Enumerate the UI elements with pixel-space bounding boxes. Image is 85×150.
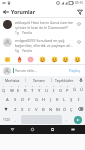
button[interactable]: Emoji	[61, 55, 70, 64]
staticText: S	[14, 97, 17, 103]
button[interactable]: Klavye	[68, 125, 77, 134]
button[interactable]: H	[40, 94, 47, 104]
staticText: T	[31, 88, 34, 94]
staticText: 1	[3, 85, 5, 88]
button[interactable]: Paylaş	[68, 67, 82, 74]
staticText: Paylaş	[69, 68, 81, 73]
button[interactable]: Geri	[0, 6, 11, 17]
button[interactable]: 5	[29, 84, 36, 94]
button[interactable]: erdgan0059 Sonuland en şuğ bağımlılar, e…	[0, 36, 85, 54]
staticText: 0	[67, 85, 69, 88]
staticText: A	[6, 97, 9, 103]
button[interactable]: Emoji	[15, 55, 24, 64]
button[interactable]: L	[61, 94, 68, 104]
staticText: Ü	[80, 87, 84, 93]
button[interactable]: S	[11, 94, 19, 104]
button[interactable]: F	[26, 94, 33, 104]
button[interactable]: Tuş	[75, 104, 85, 114]
staticText: 5g Yanıtla	[15, 49, 33, 53]
button[interactable]: 7	[43, 84, 50, 94]
staticText: U	[45, 88, 49, 94]
button[interactable]: Ç	[68, 104, 75, 114]
button[interactable]: mkbayzit Hani kısmı iLanız üzerine iyi b…	[0, 18, 85, 36]
button[interactable]: 8	[50, 84, 57, 94]
button[interactable]: 0	[64, 84, 71, 94]
button[interactable]: ?123	[0, 115, 12, 124]
button[interactable]: X	[19, 104, 26, 114]
button[interactable]: Emoji	[50, 55, 59, 64]
staticText: Merhaba	[5, 78, 20, 83]
staticText: Yorumlar	[11, 8, 35, 15]
button[interactable]: 1	[0, 84, 8, 94]
button[interactable]: Emoji	[73, 55, 82, 64]
button[interactable]: Yorum ekle...	[13, 68, 68, 73]
button[interactable]: V	[33, 104, 40, 114]
staticText: Teşekkürler	[55, 78, 74, 83]
button[interactable]: Z	[11, 104, 19, 114]
button[interactable]: C	[26, 104, 33, 114]
button[interactable]: Emoji	[26, 55, 35, 64]
staticText: ,	[15, 117, 17, 122]
staticText: 8	[53, 85, 55, 88]
button[interactable]: Emoji	[38, 55, 47, 64]
staticText: B	[42, 107, 45, 113]
button[interactable]: Son uygulamalar	[48, 125, 57, 134]
button[interactable]: Beğen	[75, 38, 82, 45]
staticText: Ç	[70, 107, 73, 113]
staticText: mkbayzit Hani kısmı iLanız üzerine iyi b…	[15, 20, 74, 30]
button[interactable]: 6	[36, 84, 43, 94]
button[interactable]: 2	[8, 84, 15, 94]
button[interactable]: 4	[22, 84, 29, 94]
staticText: ?123	[3, 118, 10, 122]
staticText: O	[59, 88, 63, 94]
button[interactable]: Tuş	[0, 104, 11, 114]
button[interactable]: Ğ	[71, 84, 78, 94]
staticText: L	[63, 97, 66, 103]
button[interactable]: Geri	[8, 125, 17, 134]
button[interactable]: N	[47, 104, 54, 114]
staticText: G	[35, 97, 39, 103]
button[interactable]: I	[75, 94, 82, 104]
staticText: 9	[60, 85, 62, 88]
staticText: F	[28, 97, 31, 103]
staticText: Ğ	[73, 87, 77, 93]
button[interactable]: Ü	[78, 84, 85, 94]
button[interactable]: Ö	[61, 104, 68, 114]
button[interactable]: Gönder	[74, 116, 82, 124]
button[interactable]: Tamam	[26, 76, 51, 84]
staticText: .	[66, 117, 68, 122]
staticText: H	[42, 97, 46, 103]
button[interactable]: Ana ekran	[28, 125, 37, 134]
button[interactable]: Nokta	[63, 115, 71, 124]
button[interactable]: A	[3, 94, 11, 104]
button[interactable]: Teşekkürler	[52, 76, 77, 84]
button[interactable]: D	[19, 94, 26, 104]
staticText: Yorum ekle...	[15, 68, 37, 73]
staticText: K	[56, 97, 59, 103]
button[interactable]: B	[40, 104, 47, 114]
staticText: Z	[14, 107, 17, 113]
button[interactable]: 9	[57, 84, 64, 94]
staticText: 6	[39, 85, 41, 88]
staticText: Ö	[63, 107, 67, 113]
button[interactable]: Ş	[68, 94, 75, 104]
staticText: M	[56, 107, 60, 113]
button[interactable]: 3	[15, 84, 22, 94]
staticText: N	[49, 107, 53, 113]
button[interactable]: G	[33, 94, 40, 104]
button[interactable]: Emoji	[3, 55, 12, 64]
staticText: 2	[11, 85, 13, 88]
button[interactable]: M	[54, 104, 61, 114]
button[interactable]: K	[54, 94, 61, 104]
button[interactable]: J	[47, 94, 54, 104]
button[interactable]: Beğen	[75, 20, 82, 27]
staticText: 5	[32, 85, 34, 88]
staticText: X	[21, 107, 24, 113]
staticText: V	[35, 107, 38, 113]
staticText: Y	[38, 88, 41, 94]
button[interactable]: Merhaba	[0, 76, 25, 84]
button[interactable]: Sesle yaz	[77, 76, 85, 84]
button[interactable]: Virgül	[12, 115, 20, 124]
button[interactable]: Gönder	[74, 6, 85, 17]
